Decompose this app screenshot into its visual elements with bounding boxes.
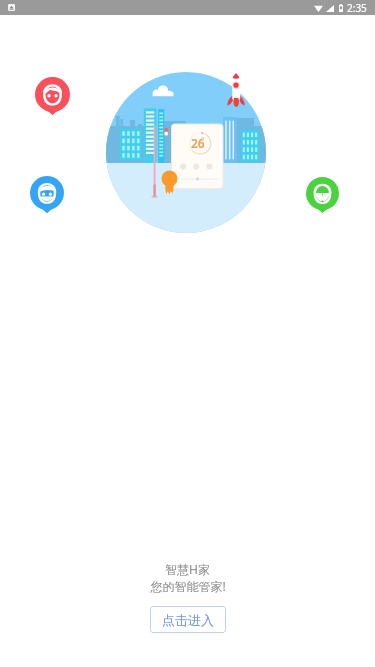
- button[interactable]: Family member 2: [30, 176, 64, 220]
- button[interactable]: Family member 1: [35, 77, 70, 123]
- button[interactable]: Family member 3: [306, 177, 339, 220]
- staticText: 2:35: [347, 1, 367, 15]
- staticText: 点击进入: [162, 612, 214, 628]
- staticText: °: [201, 135, 205, 143]
- staticText: 26: [191, 135, 205, 149]
- staticText: 您的智能管家!: [150, 578, 226, 594]
- button[interactable]: 点击进入: [150, 606, 226, 633]
- staticText: 智慧H家: [165, 561, 210, 577]
